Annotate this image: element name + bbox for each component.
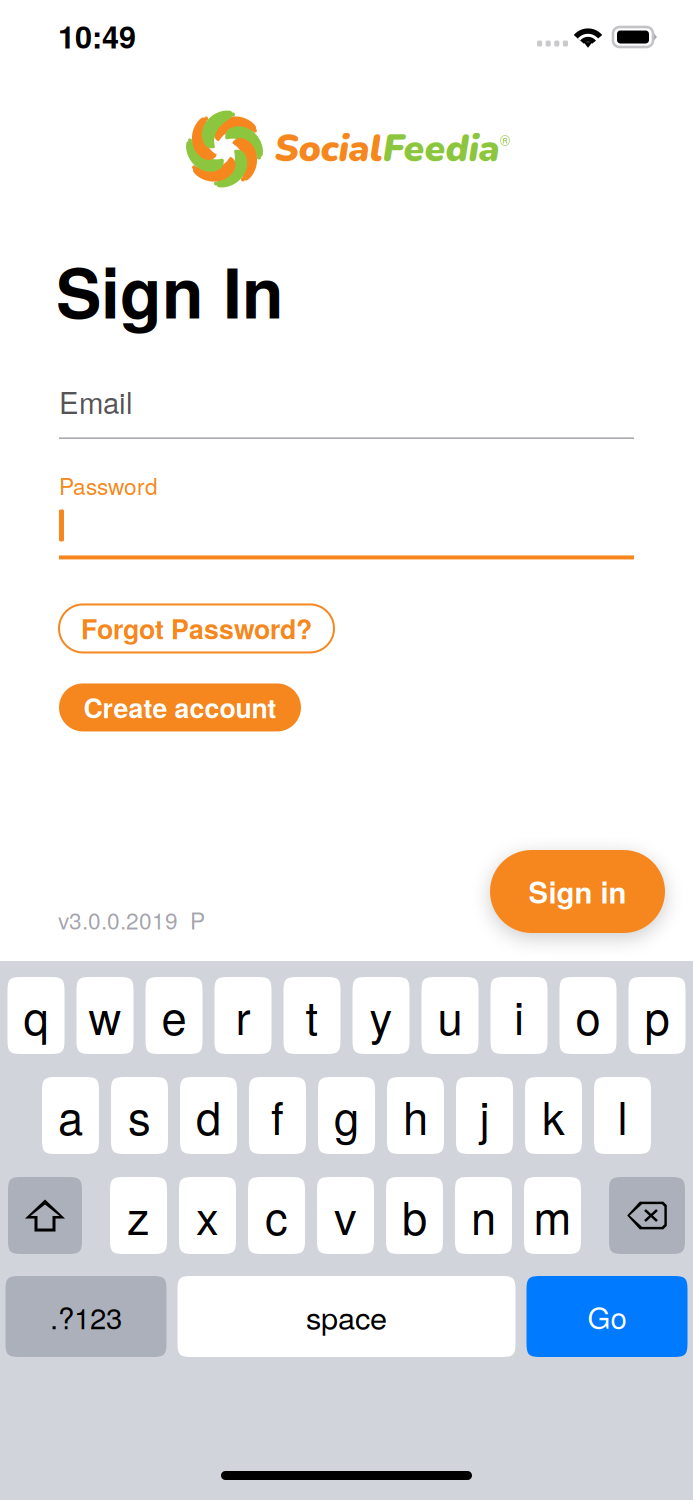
button[interactable]: e — [145, 977, 202, 1054]
button[interactable]: z — [110, 1177, 167, 1254]
staticText: x — [196, 1183, 219, 1248]
staticText: j — [479, 1083, 489, 1148]
staticText: v3.0.0.2019 P — [58, 903, 205, 936]
button[interactable]: Shift — [8, 1177, 82, 1254]
button[interactable]: c — [248, 1177, 305, 1254]
staticText: h — [403, 1083, 428, 1148]
button[interactable]: g — [318, 1077, 375, 1154]
button[interactable]: Create account — [59, 683, 301, 731]
button[interactable]: l — [594, 1077, 651, 1154]
staticText: r — [235, 983, 250, 1048]
button[interactable]: w — [76, 977, 133, 1054]
staticText: n — [471, 1183, 496, 1248]
staticText: v — [334, 1183, 357, 1248]
staticText: q — [23, 983, 48, 1048]
button[interactable]: r — [214, 977, 271, 1054]
button[interactable]: t — [283, 977, 340, 1054]
staticText: f — [271, 1083, 284, 1148]
staticText: p — [644, 983, 669, 1048]
button[interactable]: b — [386, 1177, 443, 1254]
button[interactable]: o — [559, 977, 616, 1054]
staticText: Social — [274, 123, 382, 174]
staticText: k — [542, 1083, 565, 1148]
staticText: Create account — [83, 688, 276, 726]
staticText: s — [128, 1083, 151, 1148]
button[interactable]: Go — [526, 1276, 687, 1357]
staticText: Email — [59, 380, 133, 422]
staticText: 10:49 — [58, 14, 136, 58]
button[interactable]: x — [179, 1177, 236, 1254]
button[interactable]: p — [628, 977, 685, 1054]
button[interactable]: v — [317, 1177, 374, 1254]
staticText: t — [305, 983, 318, 1048]
staticText: a — [58, 1083, 83, 1148]
staticText: l — [617, 1083, 627, 1148]
staticText: Sign In — [56, 242, 284, 339]
staticText: w — [88, 983, 121, 1048]
staticText: e — [161, 983, 186, 1048]
button[interactable]: .?123 — [5, 1276, 166, 1357]
staticText: z — [127, 1183, 150, 1248]
staticText: i — [514, 983, 524, 1048]
staticText: space — [306, 1294, 387, 1338]
staticText: b — [402, 1183, 427, 1248]
staticText: u — [437, 983, 462, 1048]
staticText: o — [575, 983, 600, 1048]
button[interactable]: j — [456, 1077, 513, 1154]
button[interactable]: n — [455, 1177, 512, 1254]
staticText: ® — [499, 132, 510, 151]
staticText: Forgot Password? — [81, 609, 312, 647]
staticText: d — [196, 1083, 221, 1148]
staticText: m — [533, 1183, 571, 1248]
staticText: .?123 — [50, 1295, 122, 1337]
button[interactable]: Forgot Password? — [59, 604, 334, 652]
button[interactable]: space — [177, 1276, 515, 1357]
button[interactable]: i — [490, 977, 547, 1054]
button[interactable]: y — [352, 977, 409, 1054]
button[interactable]: s — [111, 1077, 168, 1154]
staticText: Go — [587, 1295, 626, 1337]
staticText: g — [334, 1083, 359, 1148]
button[interactable]: m — [524, 1177, 581, 1254]
staticText: Password — [59, 469, 158, 501]
button[interactable]: Delete — [609, 1177, 685, 1254]
staticText: Sign in — [528, 870, 626, 912]
staticText: Feedia — [382, 123, 499, 174]
button[interactable]: Sign in — [490, 850, 665, 933]
button[interactable]: d — [180, 1077, 237, 1154]
button[interactable]: f — [249, 1077, 306, 1154]
staticText: y — [369, 983, 392, 1048]
button[interactable]: k — [525, 1077, 582, 1154]
button[interactable]: u — [421, 977, 478, 1054]
staticText: c — [265, 1183, 288, 1248]
button[interactable]: a — [42, 1077, 99, 1154]
button[interactable]: h — [387, 1077, 444, 1154]
button[interactable]: q — [7, 977, 64, 1054]
